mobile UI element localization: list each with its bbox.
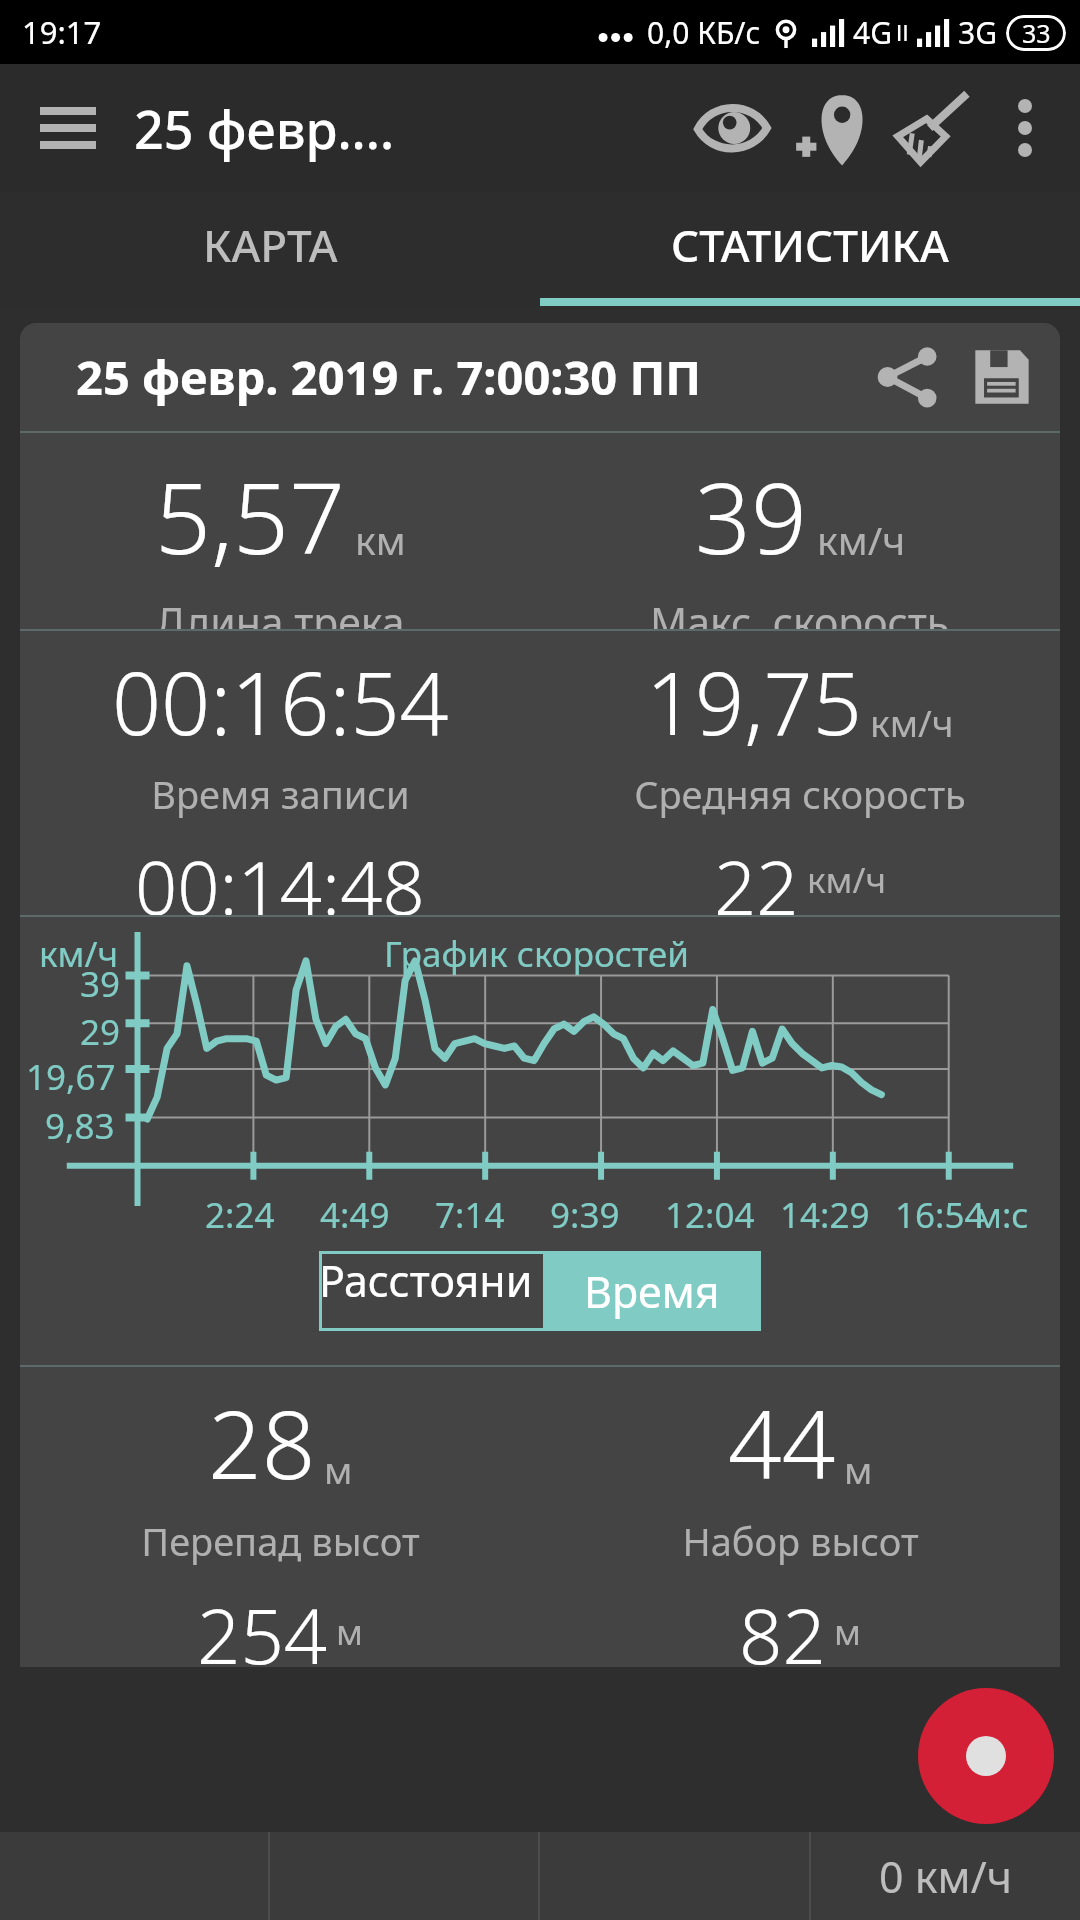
- button[interactable]: Share: [864, 333, 952, 421]
- staticText: 19,75: [646, 643, 862, 760]
- staticText: м: [844, 1444, 873, 1494]
- staticText: 29: [80, 1008, 121, 1056]
- staticText: 28: [208, 1379, 316, 1507]
- staticText: 44: [728, 1379, 836, 1507]
- button[interactable]: 0 км/ч: [811, 1832, 1080, 1920]
- staticText: 25 февр....: [134, 93, 395, 164]
- staticText: СТАТИСТИКА: [671, 215, 949, 275]
- staticText: 254: [197, 1583, 328, 1667]
- button[interactable]: КАРТА: [0, 192, 540, 298]
- staticText: 19:17: [22, 11, 102, 53]
- staticText: 00:16:54: [112, 643, 449, 760]
- button[interactable]: Clear: [882, 78, 982, 178]
- staticText: 7:14: [435, 1191, 505, 1239]
- staticText: Средняя скорость: [634, 768, 966, 820]
- staticText: 2:24: [205, 1191, 275, 1239]
- staticText: км/ч: [39, 930, 119, 978]
- staticText: 33: [1022, 16, 1051, 50]
- button[interactable]: 25 февр. 2019 г. 7:00:30 ПП: [20, 323, 1060, 431]
- staticText: м:с: [975, 1191, 1029, 1239]
- staticText: км/ч: [807, 856, 887, 904]
- staticText: Перепад высот: [141, 1515, 420, 1567]
- staticText: 00:14:48: [135, 836, 425, 915]
- staticText: 22: [714, 836, 799, 915]
- staticText: 12:04: [665, 1191, 755, 1239]
- button[interactable]: Visibility: [682, 78, 782, 178]
- staticText: Набор высот: [682, 1515, 919, 1567]
- staticText: 4G: [853, 12, 892, 53]
- staticText: км: [355, 513, 406, 566]
- staticText: Длина трека: [155, 594, 405, 629]
- button[interactable]: Время: [543, 1251, 761, 1331]
- staticText: 5,57: [155, 449, 345, 582]
- staticText: График скоростей: [384, 930, 689, 978]
- staticText: км/ч: [817, 513, 906, 566]
- staticText: 3G: [958, 12, 997, 53]
- staticText: 25 февр. 2019 г. 7:00:30 ПП: [76, 345, 702, 409]
- staticText: 0 км/ч: [879, 1847, 1012, 1906]
- staticText: 19,67: [26, 1053, 116, 1101]
- staticText: 39: [695, 449, 807, 582]
- staticText: Расстояние: [319, 1251, 543, 1331]
- staticText: м: [336, 1608, 363, 1656]
- button[interactable]: Menu: [26, 86, 110, 170]
- button[interactable]: Расстояние: [319, 1251, 543, 1331]
- staticText: 39: [80, 960, 121, 1008]
- staticText: м: [324, 1444, 353, 1494]
- staticText: Макс. скорость: [650, 594, 950, 629]
- staticText: Время записи: [151, 768, 410, 820]
- staticText: 16:54: [895, 1191, 985, 1239]
- button[interactable]: Record: [918, 1688, 1054, 1824]
- staticText: км/ч: [870, 697, 954, 747]
- button[interactable]: СТАТИСТИКА: [540, 192, 1080, 298]
- staticText: м: [834, 1608, 861, 1656]
- button[interactable]: Save: [958, 333, 1046, 421]
- staticText: 9,83: [45, 1102, 115, 1150]
- staticText: КАРТА: [203, 215, 338, 275]
- staticText: 0,0 КБ/с: [647, 12, 761, 53]
- staticText: Время: [584, 1262, 720, 1321]
- staticText: 4:49: [320, 1191, 390, 1239]
- staticText: 9:39: [550, 1191, 620, 1239]
- button[interactable]: Add marker: [782, 78, 882, 178]
- button[interactable]: More options: [982, 85, 1068, 171]
- staticText: 82: [739, 1583, 826, 1667]
- staticText: 14:29: [780, 1191, 870, 1239]
